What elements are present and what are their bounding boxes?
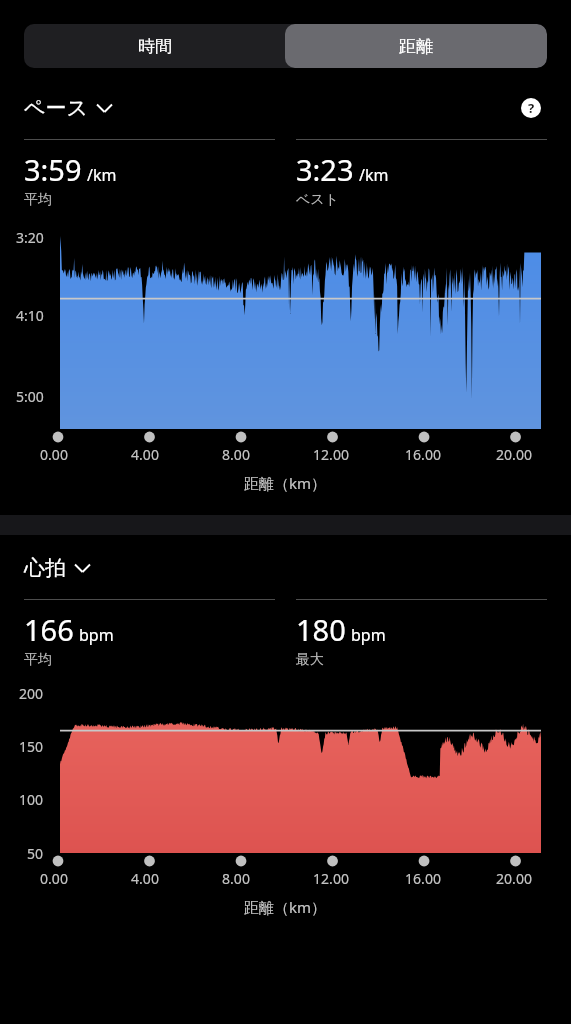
staticText: bpm (79, 624, 114, 646)
staticText: 距離 (399, 36, 433, 57)
staticText: 12.00 (313, 445, 349, 464)
staticText: 心拍 (24, 555, 66, 581)
staticText: 0.00 (40, 445, 68, 464)
button[interactable]: 距離 (285, 24, 547, 68)
staticText: 200 (19, 684, 44, 703)
staticText: 180 (296, 610, 346, 649)
staticText: 5:00 (16, 387, 44, 406)
staticText: 最大 (296, 651, 324, 669)
staticText: 12.00 (313, 869, 349, 888)
button[interactable]: ペース (24, 95, 118, 121)
staticText: 16.00 (405, 869, 441, 888)
staticText: 8.00 (222, 869, 250, 888)
staticText: 4.00 (131, 445, 159, 464)
staticText: 4.00 (131, 869, 159, 888)
staticText: ペース (24, 95, 88, 121)
button[interactable]: 心拍 (24, 555, 96, 581)
staticText: ベスト (296, 191, 339, 209)
staticText: 3:23 (296, 150, 354, 189)
staticText: 平均 (24, 651, 52, 669)
staticText: 16.00 (405, 445, 441, 464)
staticText: 平均 (24, 191, 52, 209)
staticText: ? (528, 99, 535, 117)
staticText: 距離（km） (244, 897, 327, 917)
staticText: 50 (27, 844, 44, 863)
staticText: 0.00 (40, 869, 68, 888)
staticText: 3:59 (24, 150, 82, 189)
staticText: 150 (19, 737, 44, 756)
staticText: /km (87, 164, 117, 186)
button[interactable]: Help (515, 92, 547, 124)
button[interactable]: 時間 (24, 24, 285, 68)
staticText: 100 (19, 790, 44, 809)
staticText: 8.00 (222, 445, 250, 464)
staticText: 4:10 (16, 306, 44, 325)
staticText: 時間 (138, 36, 172, 57)
staticText: bpm (351, 624, 386, 646)
staticText: 距離（km） (244, 473, 327, 493)
staticText: 3:20 (16, 228, 44, 247)
staticText: /km (359, 164, 389, 186)
staticText: 20.00 (496, 869, 532, 888)
staticText: 166 (24, 610, 74, 649)
staticText: 20.00 (496, 445, 532, 464)
